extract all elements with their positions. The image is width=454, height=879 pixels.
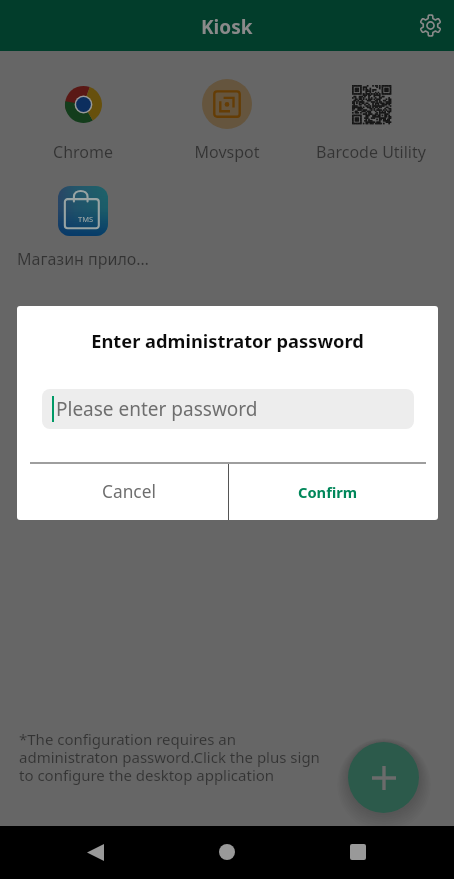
button[interactable]: Back [71, 828, 119, 876]
button[interactable]: Cancel [17, 464, 228, 520]
staticText: Cancel [102, 480, 156, 504]
staticText: Kiosk [201, 14, 253, 40]
button[interactable]: Chrome [15, 77, 151, 167]
button[interactable]: Settings [410, 5, 450, 45]
staticText: Movspot [159, 141, 295, 163]
staticText: Please enter password [56, 396, 258, 422]
button[interactable]: Movspot [159, 77, 295, 167]
button[interactable]: Recents [334, 828, 382, 876]
staticText: Магазин прило… [15, 248, 151, 270]
staticText: Enter administrator password [17, 328, 438, 353]
staticText: TMS [78, 214, 94, 224]
button[interactable]: TMS [15, 184, 151, 274]
staticText: Chrome [15, 141, 151, 163]
staticText: Confirm [298, 482, 358, 502]
button[interactable]: Barcode Utility [303, 77, 439, 167]
button[interactable]: Add application [348, 742, 419, 813]
button[interactable]: Please enter password [42, 389, 414, 429]
staticText: Barcode Utility [303, 141, 439, 163]
button[interactable]: Confirm [229, 464, 438, 520]
staticText: *The configuration requires an administr… [19, 729, 329, 786]
button[interactable]: Home [203, 828, 251, 876]
